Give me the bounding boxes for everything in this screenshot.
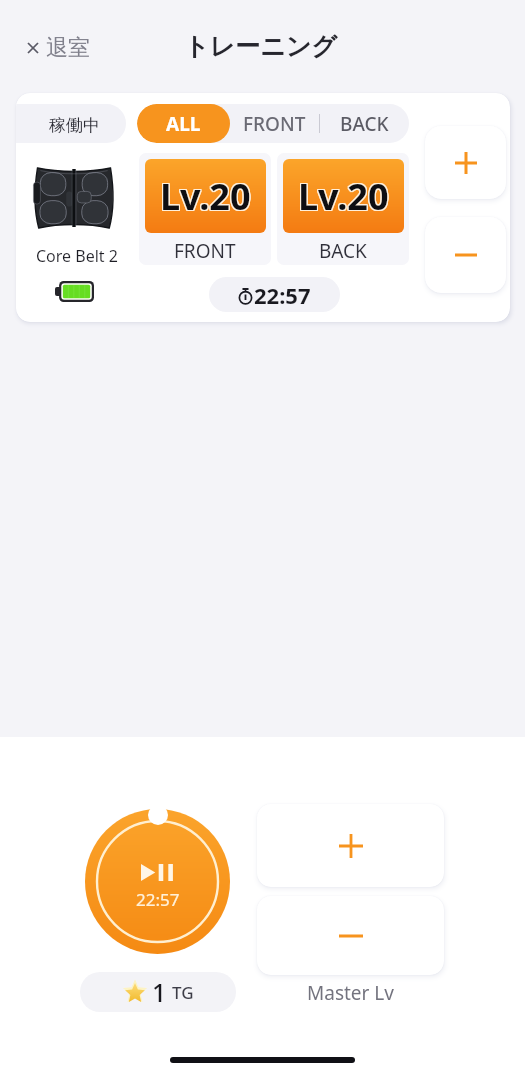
- staticText: トレーニング: [184, 31, 337, 62]
- staticText: 1: [152, 975, 167, 1009]
- staticText: Lv.20: [160, 172, 251, 221]
- staticText: 22:57: [136, 888, 180, 911]
- staticText: Lv.20: [299, 172, 390, 221]
- staticText: Lv.20: [298, 171, 389, 220]
- button[interactable]: Decrease master level: [257, 896, 444, 975]
- button[interactable]: Pause training: [85, 809, 230, 954]
- staticText: BACK: [319, 238, 367, 264]
- staticText: Lv.20: [297, 173, 388, 222]
- staticText: Lv.20: [297, 172, 388, 221]
- staticText: 退室: [46, 34, 90, 62]
- staticText: Core Belt 2: [36, 245, 118, 267]
- staticText: Lv.20: [298, 172, 389, 221]
- button[interactable]: Lv.20: [277, 153, 409, 265]
- staticText: Lv.20: [159, 171, 250, 220]
- staticText: Lv.20: [299, 173, 390, 222]
- button[interactable]: Lv.20: [139, 153, 271, 265]
- button[interactable]: Increase master level: [257, 804, 444, 887]
- button[interactable]: ALL: [137, 104, 230, 143]
- staticText: Master Lv: [307, 980, 394, 1006]
- button[interactable]: 22:57: [209, 277, 340, 312]
- staticText: Lv.20: [298, 173, 389, 222]
- button[interactable]: BACK: [320, 104, 409, 143]
- staticText: 稼働中: [49, 115, 100, 136]
- staticText: Lv.20: [161, 173, 252, 222]
- staticText: TG: [172, 981, 194, 1004]
- staticText: Lv.20: [159, 172, 250, 221]
- staticText: Lv.20: [299, 171, 390, 220]
- button[interactable]: Increase level: [425, 126, 506, 199]
- button[interactable]: 稼働中: [16, 104, 126, 143]
- staticText: 22:57: [254, 280, 311, 310]
- staticText: Lv.20: [159, 173, 250, 222]
- staticText: FRONT: [243, 111, 306, 137]
- staticText: ALL: [166, 111, 201, 137]
- staticText: Lv.20: [297, 171, 388, 220]
- button[interactable]: Decrease level: [425, 217, 506, 293]
- button[interactable]: 1: [80, 972, 236, 1012]
- button[interactable]: 退室: [24, 26, 94, 70]
- button[interactable]: FRONT: [230, 104, 319, 143]
- staticText: Lv.20: [161, 171, 252, 220]
- staticText: Lv.20: [160, 171, 251, 220]
- staticText: BACK: [340, 111, 389, 137]
- staticText: FRONT: [174, 238, 236, 264]
- staticText: Lv.20: [161, 172, 252, 221]
- staticText: Lv.20: [160, 173, 251, 222]
